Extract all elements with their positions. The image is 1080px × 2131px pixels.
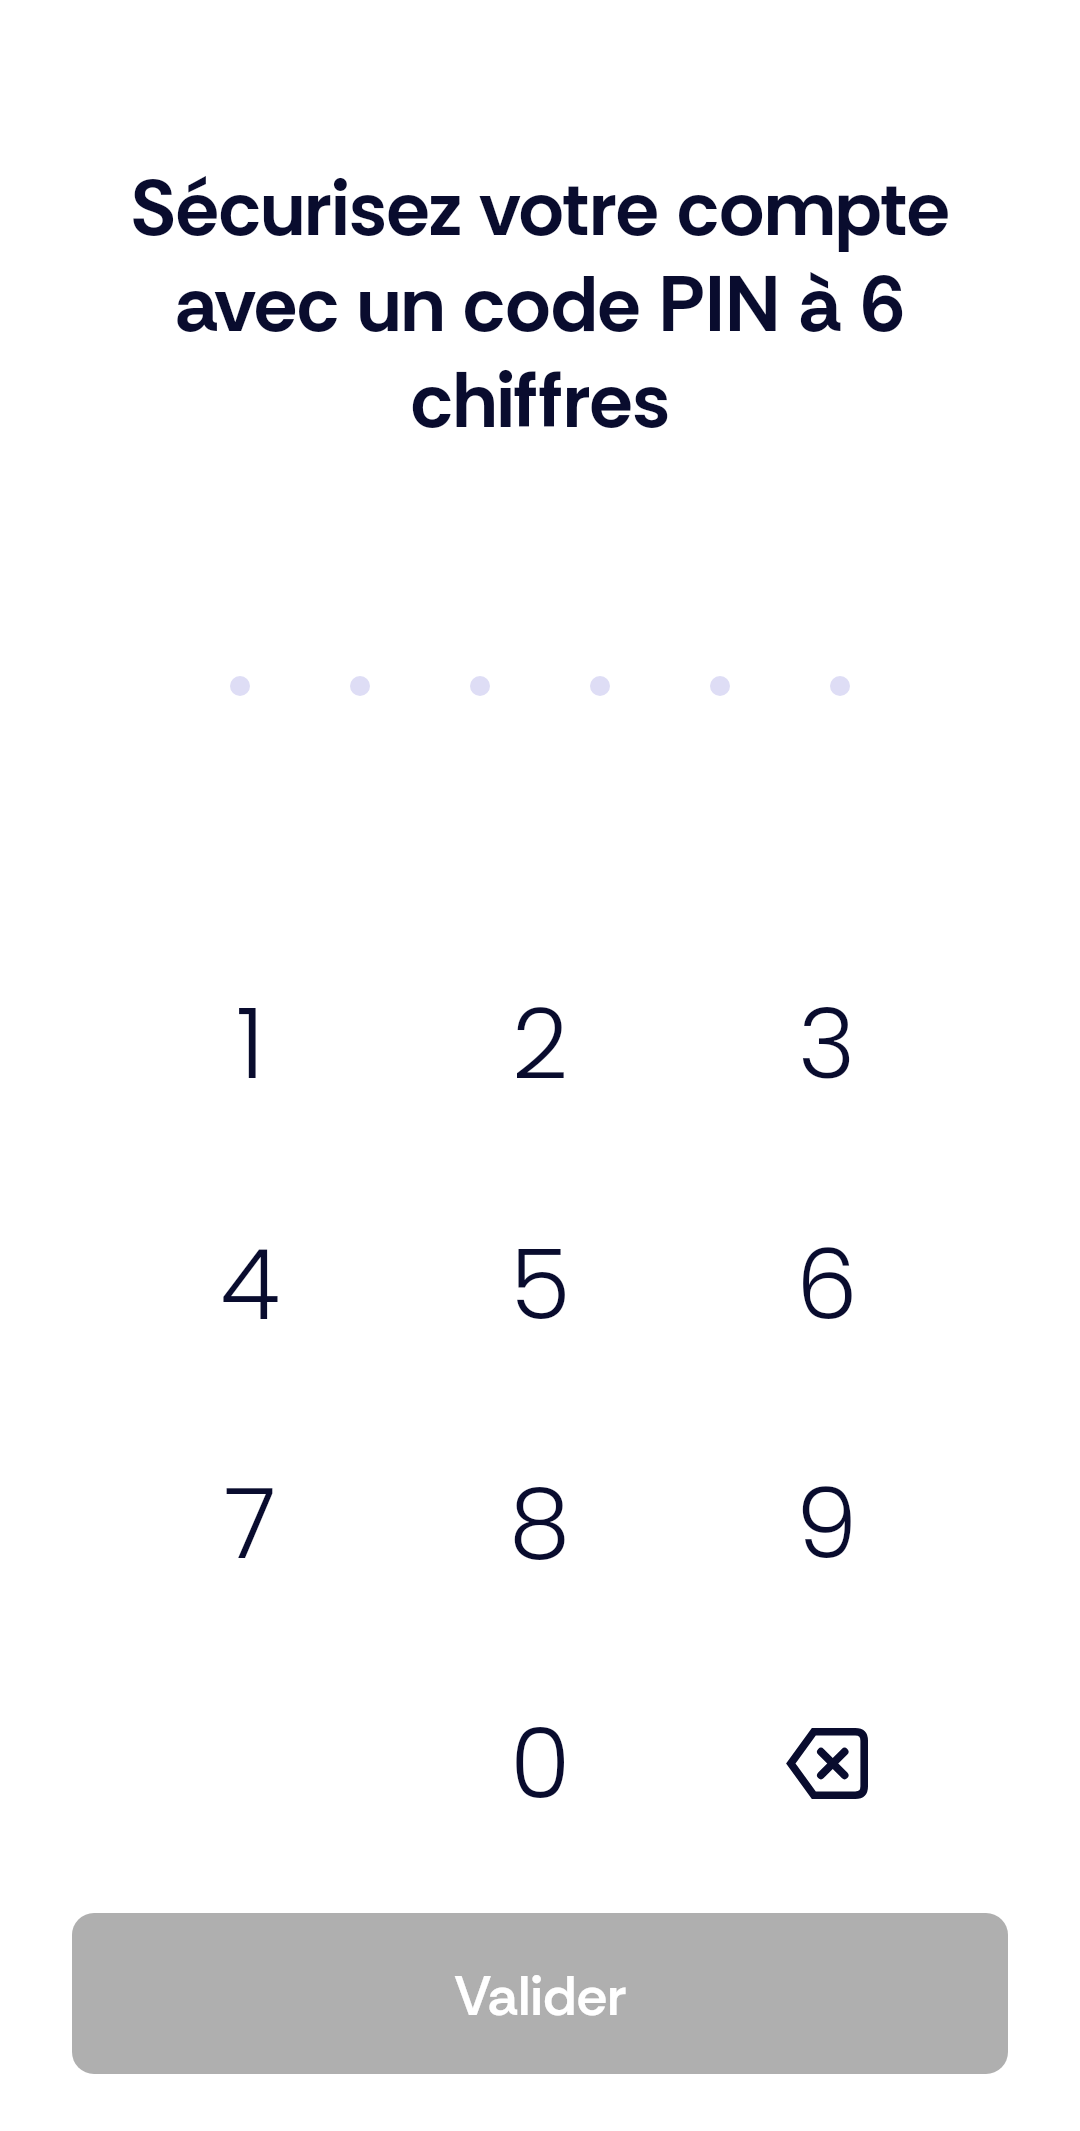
staticText: 1 bbox=[236, 975, 265, 1112]
button[interactable]: 6 bbox=[727, 1194, 927, 1374]
button[interactable]: 0 bbox=[440, 1673, 640, 1853]
button[interactable]: 7 bbox=[150, 1433, 350, 1613]
staticText: 3 bbox=[798, 975, 856, 1112]
button[interactable]: 2 bbox=[440, 953, 640, 1133]
button[interactable]: 8 bbox=[440, 1433, 640, 1613]
staticText: 7 bbox=[224, 1455, 277, 1592]
button[interactable]: Valider bbox=[72, 1913, 1008, 2074]
staticText: 0 bbox=[510, 1695, 571, 1832]
button[interactable]: 5 bbox=[440, 1194, 640, 1374]
staticText: 6 bbox=[796, 1216, 858, 1353]
button[interactable]: 3 bbox=[727, 953, 927, 1133]
staticText: 8 bbox=[509, 1455, 571, 1592]
staticText: 2 bbox=[512, 975, 569, 1112]
button[interactable]: 9 bbox=[727, 1433, 927, 1613]
button[interactable]: 1 bbox=[150, 953, 350, 1133]
staticText: Valider bbox=[454, 1960, 627, 2032]
staticText: 9 bbox=[796, 1455, 858, 1592]
button[interactable]: 4 bbox=[150, 1194, 350, 1374]
staticText: Sécurisez votre compte avec un code PIN … bbox=[0, 158, 1080, 451]
staticText: 5 bbox=[510, 1216, 571, 1353]
button[interactable]: Supprimer bbox=[727, 1673, 927, 1853]
staticText: 4 bbox=[220, 1216, 281, 1353]
